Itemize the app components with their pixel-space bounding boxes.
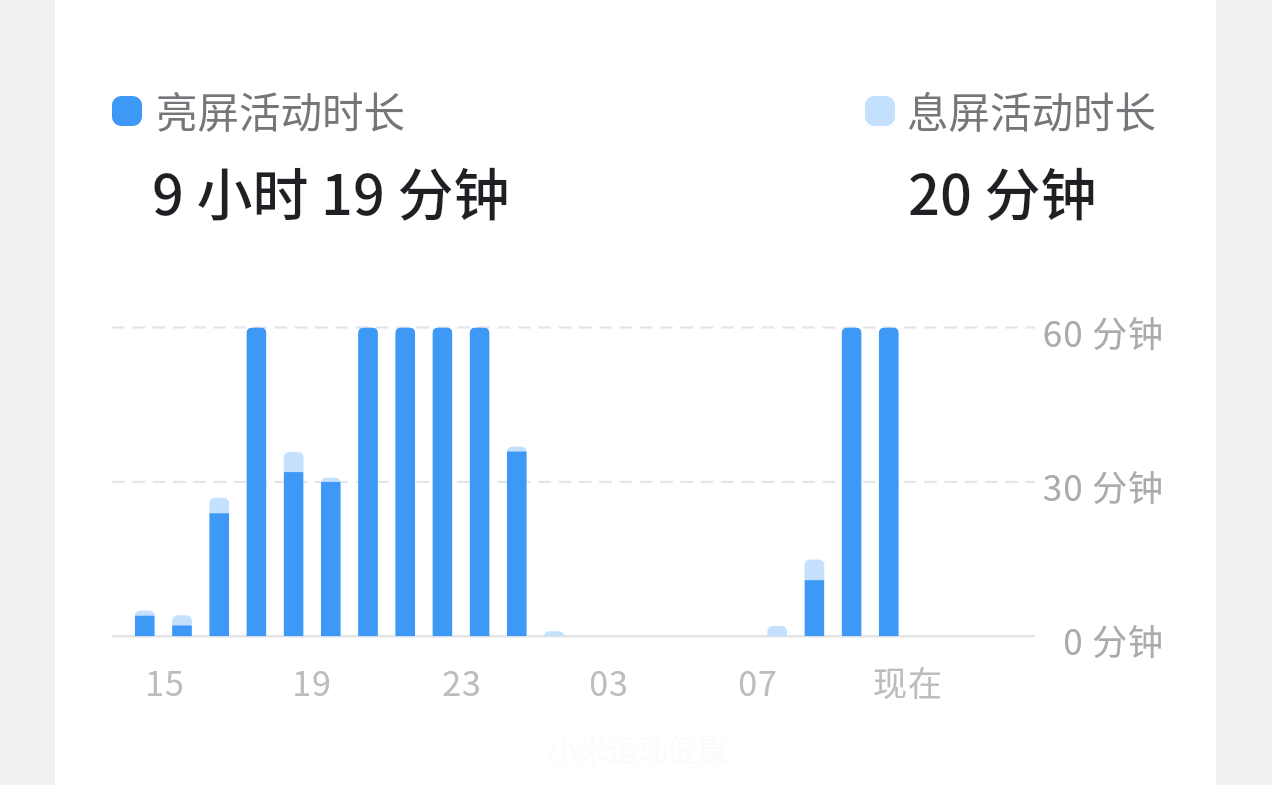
button[interactable]: 息屏活动时长 <box>851 84 1101 144</box>
staticText: 07 <box>698 657 818 706</box>
staticText: 23 <box>402 657 522 706</box>
staticText: 15 <box>105 657 225 706</box>
staticText: 息屏活动时长 <box>907 80 1157 140</box>
staticText: 30 分钟 <box>1040 460 1164 511</box>
button[interactable]: 03 <box>549 657 669 706</box>
other: 24 小时活动时长柱状图 <box>55 0 1216 785</box>
staticText: 19 <box>252 657 372 706</box>
staticText: 20 分钟 <box>908 150 1097 231</box>
button[interactable]: 亮屏活动时长 <box>100 84 350 144</box>
staticText: 03 <box>549 657 669 706</box>
button[interactable]: 现在 <box>848 657 968 706</box>
staticText: 9 小时 19 分钟 <box>152 150 510 231</box>
button[interactable]: 07 <box>698 657 818 706</box>
staticText: 现在 <box>848 657 968 706</box>
staticText: 60 分钟 <box>1040 306 1164 357</box>
staticText: 0 分钟 <box>1040 614 1164 665</box>
button[interactable]: 19 <box>252 657 372 706</box>
button[interactable]: 15 <box>105 657 225 706</box>
staticText: 亮屏活动时长 <box>156 80 406 140</box>
button[interactable]: 23 <box>402 657 522 706</box>
